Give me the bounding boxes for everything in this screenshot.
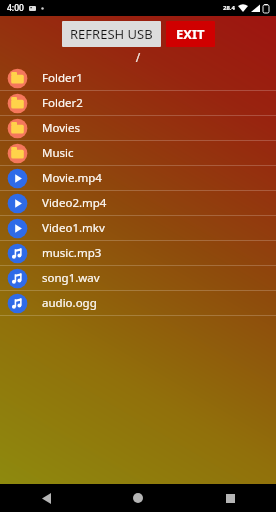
button[interactable]: song1.wav <box>0 266 276 291</box>
button[interactable]: Back <box>0 484 92 512</box>
button[interactable]: Movies <box>0 116 276 141</box>
staticText: 4:00 <box>7 2 24 14</box>
staticText: Video1.mkv <box>42 220 105 236</box>
button[interactable]: Video2.mp4 <box>0 191 276 216</box>
staticText: REFRESH USB <box>70 25 153 43</box>
staticText: / <box>0 49 276 65</box>
staticText: Folder1 <box>42 70 83 86</box>
staticText: EXIT <box>176 25 205 43</box>
staticText: Movies <box>42 120 80 136</box>
button[interactable]: EXIT <box>166 21 215 47</box>
staticText: Folder2 <box>42 95 83 111</box>
button[interactable]: audio.ogg <box>0 291 276 316</box>
staticText: song1.wav <box>42 270 100 286</box>
staticText: Music <box>42 145 74 161</box>
button[interactable]: Video1.mkv <box>0 216 276 241</box>
staticText: Video2.mp4 <box>42 195 107 211</box>
staticText: audio.ogg <box>42 295 97 311</box>
staticText: 28.4 <box>223 4 235 12</box>
button[interactable]: Folder2 <box>0 91 276 116</box>
staticText: music.mp3 <box>42 245 102 261</box>
button[interactable]: Movie.mp4 <box>0 166 276 191</box>
button[interactable]: Recent apps <box>184 484 276 512</box>
button[interactable]: Folder1 <box>0 66 276 91</box>
button[interactable]: REFRESH USB <box>62 21 161 47</box>
button[interactable]: music.mp3 <box>0 241 276 266</box>
staticText: Movie.mp4 <box>42 170 102 186</box>
button[interactable]: Home <box>92 484 184 512</box>
button[interactable]: Music <box>0 141 276 166</box>
